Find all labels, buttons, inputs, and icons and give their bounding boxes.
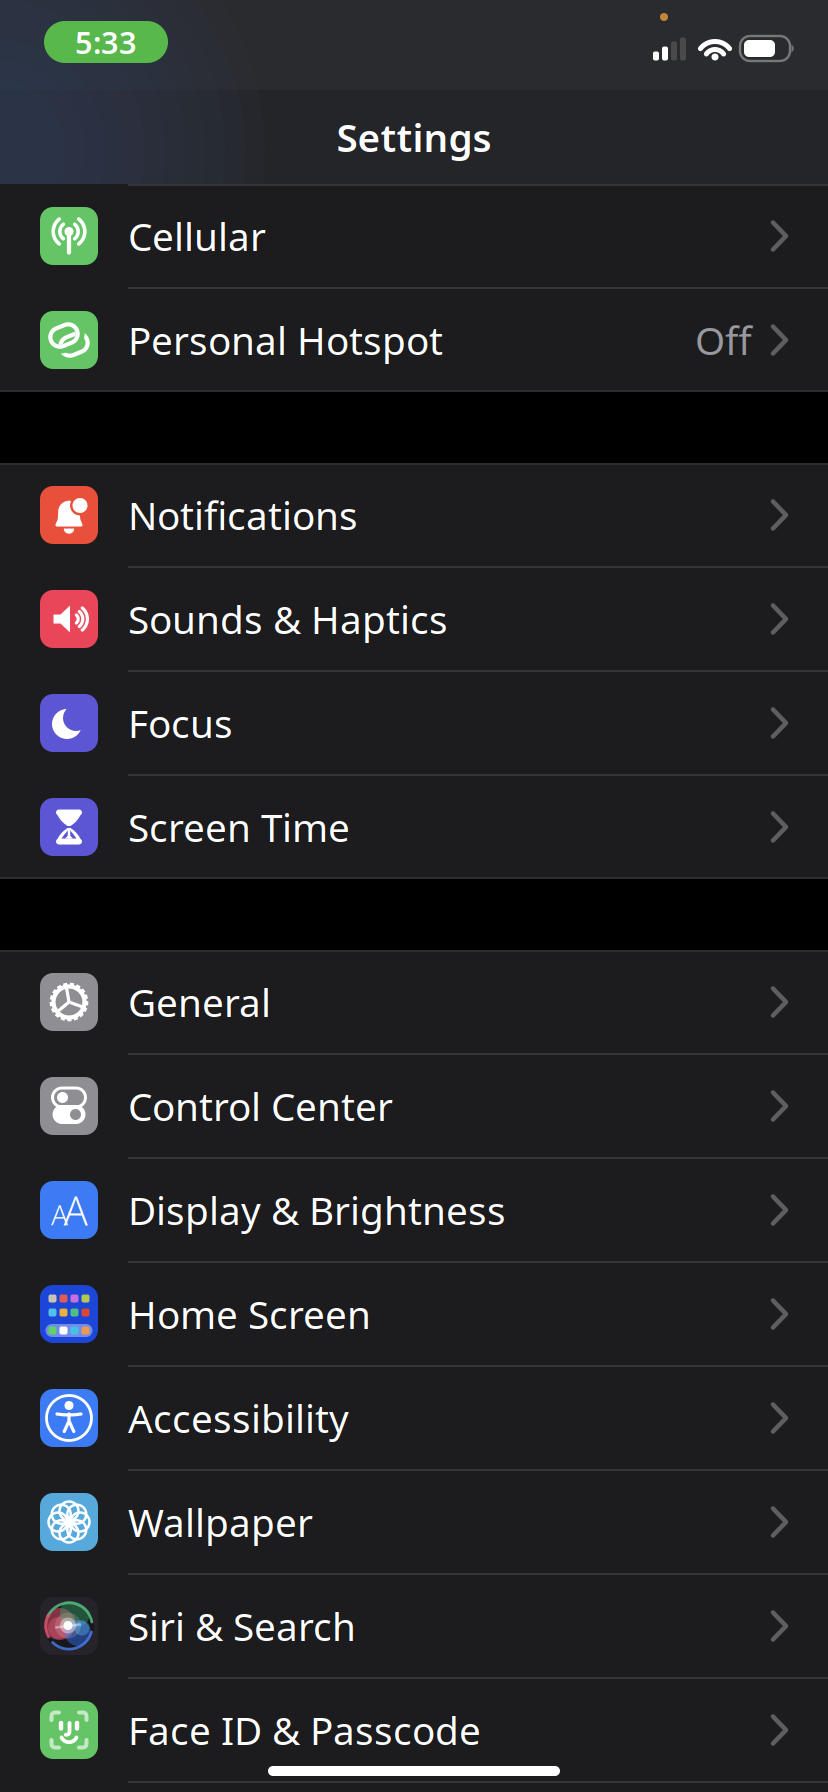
staticText: Wallpaper [128, 1496, 313, 1548]
staticText: Settings [336, 111, 491, 163]
button[interactable]: A [0, 1158, 828, 1262]
button[interactable]: Cellular [0, 184, 828, 288]
staticText: Control Center [128, 1080, 393, 1132]
staticText: Focus [128, 697, 233, 749]
staticText: Personal Hotspot [128, 314, 443, 366]
button[interactable]: Wallpaper [0, 1470, 828, 1574]
button[interactable]: Face ID & Passcode [0, 1678, 828, 1782]
staticText: Off [695, 314, 752, 366]
staticText: 5:33 [75, 22, 137, 62]
staticText: Notifications [128, 489, 358, 541]
staticText: A [51, 1196, 68, 1233]
button[interactable]: Home Screen [0, 1262, 828, 1366]
button[interactable]: Personal Hotspot [0, 288, 828, 392]
staticText: Siri & Search [128, 1600, 356, 1652]
button[interactable]: Accessibility [0, 1366, 828, 1470]
button[interactable]: Control Center [0, 1054, 828, 1158]
button[interactable]: General [0, 950, 828, 1054]
button[interactable]: Sounds & Haptics [0, 567, 828, 671]
staticText: Accessibility [128, 1392, 349, 1444]
staticText: Screen Time [128, 801, 350, 853]
button[interactable]: Siri & Search [0, 1574, 828, 1678]
staticText: A [63, 1183, 87, 1236]
staticText: Sounds & Haptics [128, 593, 448, 645]
staticText: General [128, 976, 271, 1028]
button[interactable]: Focus [0, 671, 828, 775]
staticText: Display & Brightness [128, 1184, 506, 1236]
staticText: Home Screen [128, 1288, 371, 1340]
staticText: Face ID & Passcode [128, 1704, 481, 1756]
button[interactable]: Notifications [0, 463, 828, 567]
staticText: Cellular [128, 210, 266, 262]
button[interactable]: Screen Time [0, 775, 828, 879]
